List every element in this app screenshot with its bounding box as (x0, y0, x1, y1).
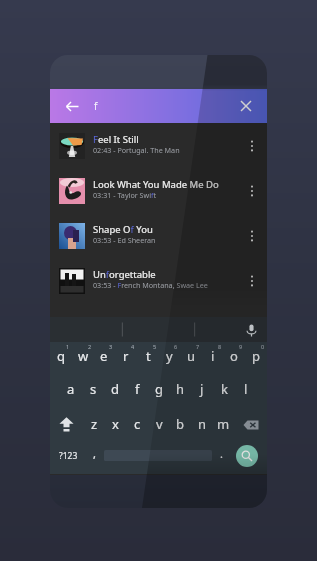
button[interactable]: n (192, 408, 212, 441)
button[interactable]: h (170, 375, 190, 408)
staticText: d (111, 380, 119, 398)
staticText: k (221, 380, 228, 398)
button[interactable]: 9 (224, 342, 244, 375)
staticText: Feel It Still (93, 133, 139, 146)
staticText: 2 (88, 343, 92, 350)
staticText: c (134, 415, 141, 433)
staticText: 5 (153, 343, 157, 350)
staticText: g (155, 380, 163, 398)
staticText: 3 (109, 343, 113, 350)
button[interactable]: , (84, 441, 104, 474)
button[interactable]: f (127, 375, 147, 408)
staticText: , (93, 446, 96, 461)
button[interactable]: l (236, 375, 256, 408)
staticText: a (67, 380, 75, 398)
staticText: l (244, 380, 248, 398)
staticText: p (252, 347, 260, 365)
button[interactable]: z (84, 408, 104, 441)
button[interactable]: Unforgettable (50, 258, 267, 303)
button[interactable]: Space (104, 441, 212, 474)
staticText: 7 (196, 343, 200, 350)
staticText: q (57, 347, 65, 365)
staticText: m (217, 415, 230, 433)
button[interactable]: ?123 (52, 441, 84, 474)
staticText: h (176, 380, 185, 398)
staticText: x (112, 415, 119, 433)
button[interactable]: 8 (203, 342, 223, 375)
button[interactable]: b (170, 408, 190, 441)
staticText: z (91, 415, 98, 433)
button[interactable]: 3 (94, 342, 114, 375)
button[interactable]: More options (240, 269, 264, 293)
staticText: w (78, 347, 89, 365)
button[interactable]: k (214, 375, 234, 408)
button[interactable]: j (192, 375, 212, 408)
staticText: u (187, 347, 196, 365)
staticText: Look What You Made Me Do (93, 178, 219, 191)
button[interactable]: 6 (159, 342, 179, 375)
staticText: 03:53 - Ed Sheeran (93, 235, 156, 245)
staticText: . (220, 446, 223, 461)
button[interactable]: g (149, 375, 169, 408)
staticText: Unforgettable (93, 268, 156, 281)
staticText: b (176, 415, 184, 433)
staticText: r (123, 347, 129, 365)
staticText: ?123 (59, 450, 78, 462)
button[interactable]: Backspace (235, 408, 267, 441)
staticText: 4 (131, 343, 135, 350)
staticText: 6 (174, 343, 178, 350)
staticText: 0 (261, 343, 265, 350)
button[interactable]: 0 (246, 342, 266, 375)
staticText: i (211, 347, 215, 365)
button[interactable]: Voice input (240, 319, 262, 341)
staticText: 03:53 - French Montana, Swae Lee (93, 280, 208, 290)
staticText: v (156, 415, 163, 433)
button[interactable]: Shape Of You (50, 213, 267, 258)
staticText: f (94, 99, 98, 113)
staticText: 9 (239, 343, 243, 350)
staticText: 8 (218, 343, 222, 350)
staticText: o (230, 347, 238, 365)
button[interactable]: Look What You Made Me Do (50, 168, 267, 213)
button[interactable]: 1 (51, 342, 71, 375)
button[interactable]: Back (55, 89, 89, 123)
button[interactable]: . (212, 441, 230, 474)
button[interactable]: d (105, 375, 125, 408)
button[interactable]: More options (240, 179, 264, 203)
button[interactable]: v (149, 408, 169, 441)
staticText: n (198, 415, 207, 433)
staticText: 03:31 - Taylor Swift (93, 190, 157, 200)
button[interactable]: Shift (50, 408, 82, 441)
button[interactable]: a (61, 375, 81, 408)
staticText: s (90, 380, 97, 398)
button[interactable]: More options (240, 224, 264, 248)
staticText: e (100, 347, 108, 365)
button[interactable]: More options (240, 134, 264, 158)
staticText: 02:43 - Portugal. The Man (93, 145, 180, 155)
button[interactable]: m (213, 408, 233, 441)
button[interactable]: Search (230, 441, 264, 474)
staticText: Shape Of You (93, 223, 153, 236)
staticText: 1 (66, 343, 70, 350)
button[interactable]: c (127, 408, 147, 441)
button[interactable]: s (83, 375, 103, 408)
staticText: j (200, 380, 204, 398)
button[interactable]: 4 (116, 342, 136, 375)
staticText: y (166, 347, 173, 365)
button[interactable]: 2 (73, 342, 93, 375)
staticText: t (146, 347, 151, 365)
button[interactable]: 7 (181, 342, 201, 375)
staticText: f (135, 380, 140, 398)
button[interactable]: Clear search (229, 89, 263, 123)
button[interactable]: 5 (138, 342, 158, 375)
button[interactable]: x (105, 408, 125, 441)
button[interactable]: Feel It Still (50, 123, 267, 168)
